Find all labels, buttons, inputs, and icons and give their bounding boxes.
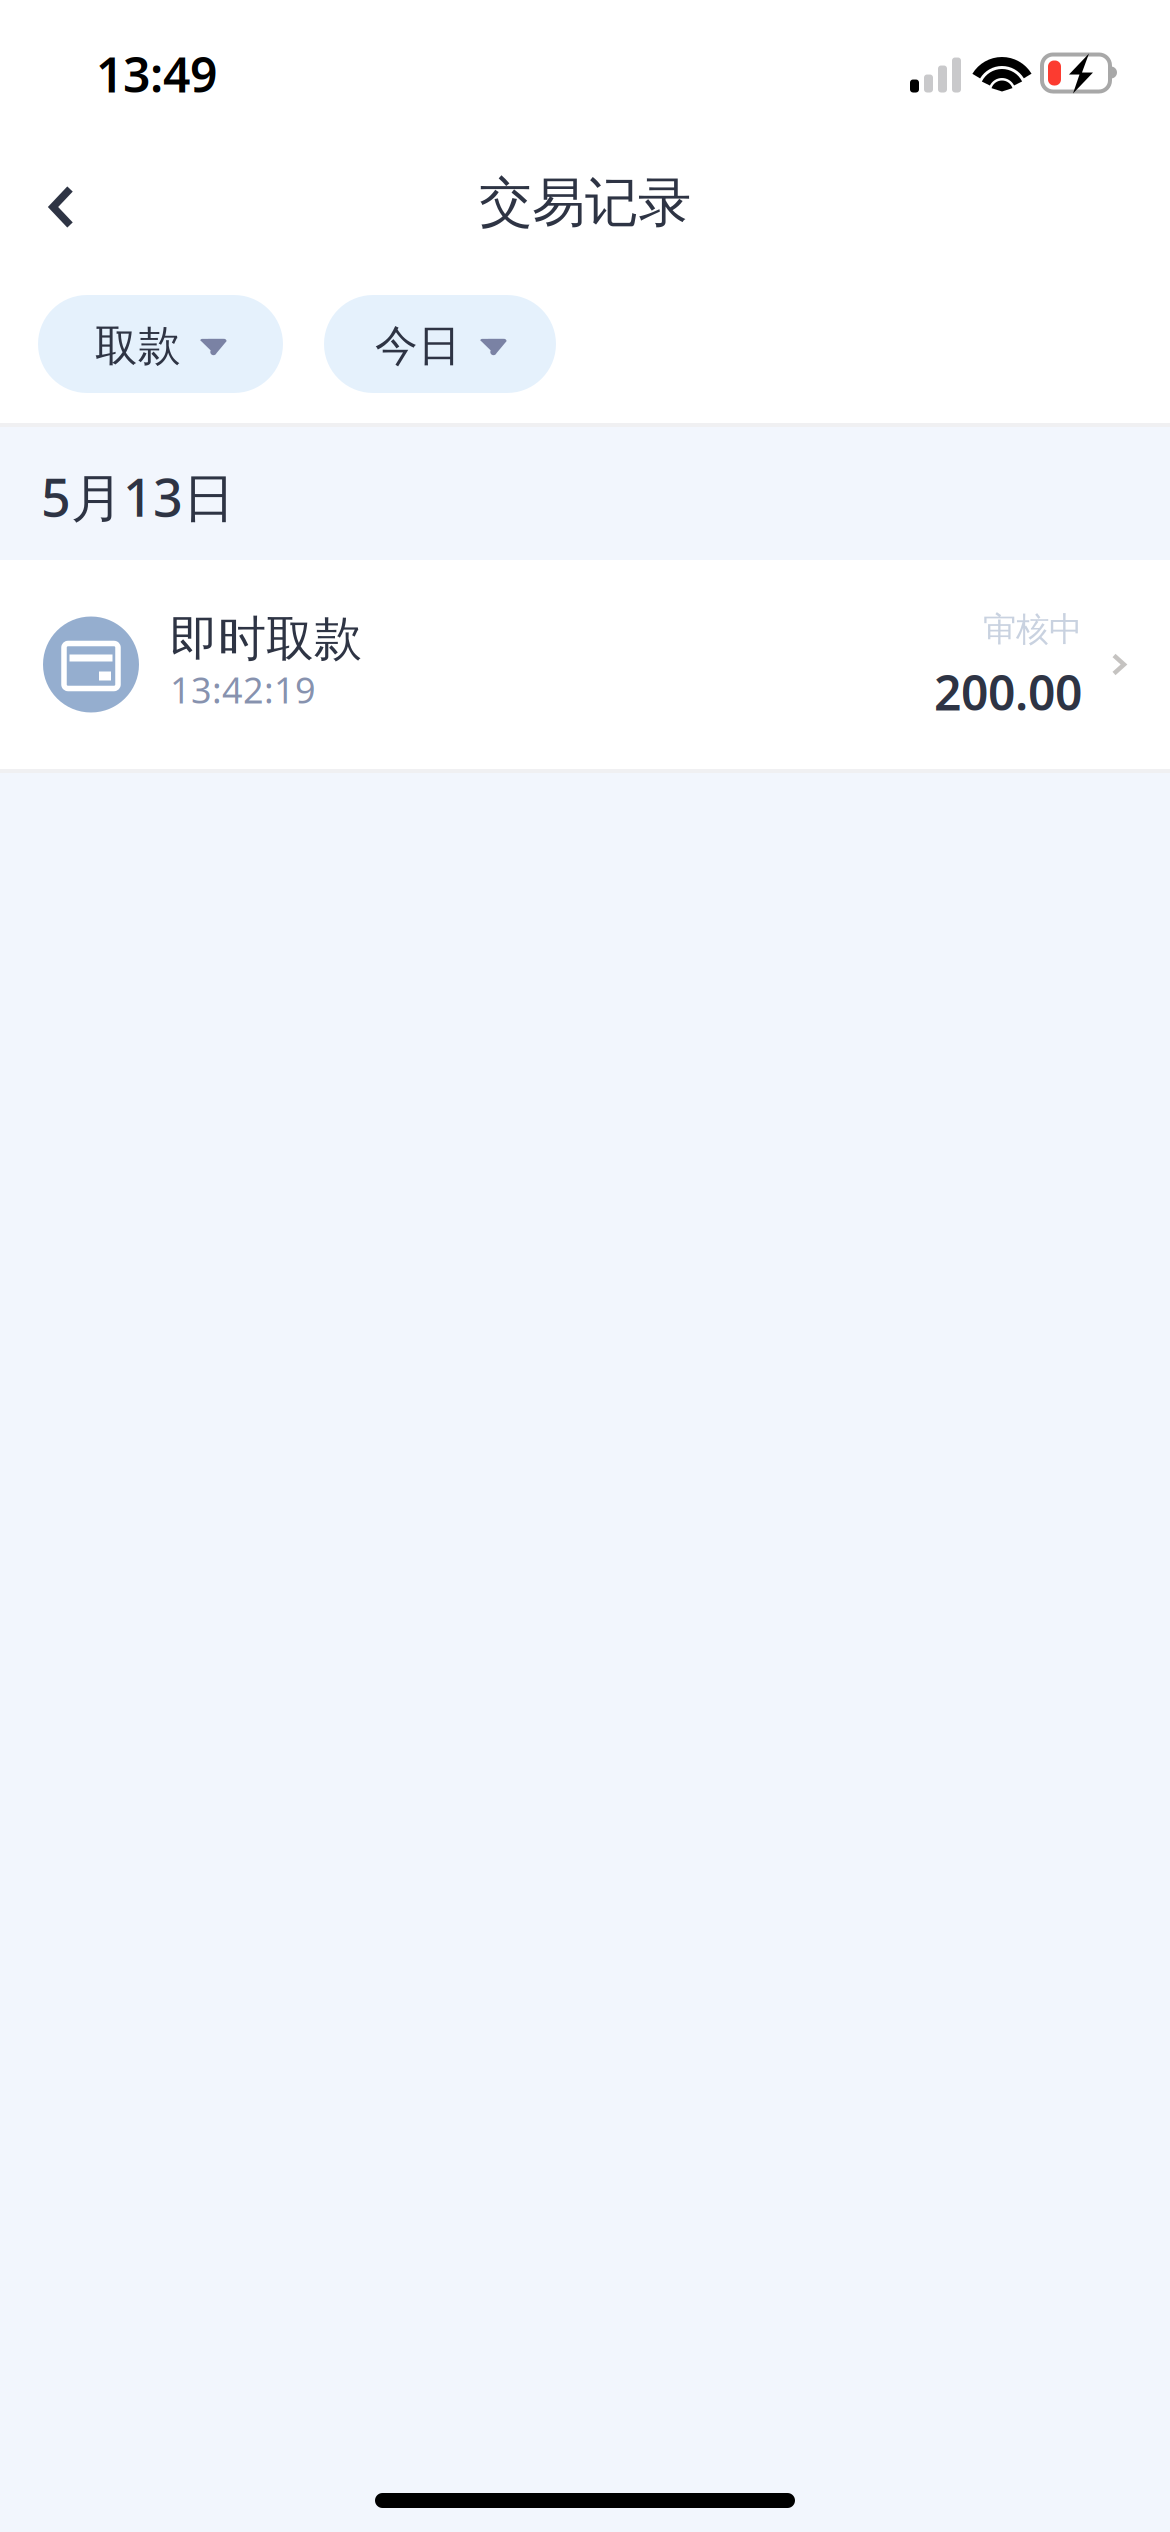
- staticText: 即时取款: [170, 609, 362, 668]
- staticText: 200.00: [934, 660, 1082, 724]
- staticText: 审核中: [983, 609, 1082, 650]
- button[interactable]: Back: [0, 154, 105, 266]
- staticText: 5月13日: [41, 462, 235, 531]
- button[interactable]: 取款: [38, 295, 283, 393]
- staticText: 今日: [375, 320, 461, 372]
- staticText: 13:42:19: [170, 666, 316, 713]
- staticText: 交易记录: [479, 170, 691, 235]
- staticText: 13:49: [96, 42, 217, 106]
- staticText: 取款: [95, 320, 181, 372]
- button[interactable]: 即时取款: [0, 560, 1170, 769]
- button[interactable]: 今日: [324, 295, 556, 393]
